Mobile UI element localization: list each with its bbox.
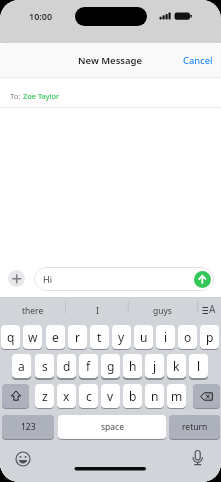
staticText: o: [184, 329, 192, 345]
staticText: x: [63, 388, 70, 404]
staticText: there: [22, 305, 44, 317]
staticText: i: [164, 329, 168, 345]
staticText: r: [75, 329, 80, 345]
staticText: a: [18, 358, 25, 374]
staticText: 10:00: [29, 10, 53, 22]
button[interactable]: h: [123, 354, 142, 378]
staticText: return: [182, 421, 208, 433]
staticText: New Message: [78, 54, 143, 67]
button[interactable]: l: [189, 354, 208, 378]
staticText: u: [140, 329, 148, 345]
button[interactable]: d: [57, 354, 76, 378]
button[interactable]: c: [79, 384, 98, 408]
button[interactable]: q: [1, 325, 20, 349]
button[interactable]: p: [200, 325, 219, 349]
staticText: d: [63, 358, 71, 374]
button[interactable]: [193, 384, 220, 408]
button[interactable]: m: [167, 384, 186, 408]
button[interactable]: a: [12, 354, 31, 378]
staticText: l: [197, 358, 201, 374]
staticText: s: [42, 358, 48, 374]
button[interactable]: b: [123, 384, 142, 408]
staticText: j: [153, 358, 157, 374]
button[interactable]: s: [35, 354, 54, 378]
button[interactable]: return: [169, 415, 220, 439]
button[interactable]: guys: [128, 297, 197, 325]
staticText: Zoe Taylor: [23, 91, 60, 101]
button[interactable]: j: [145, 354, 164, 378]
button[interactable]: f: [79, 354, 98, 378]
staticText: q: [7, 329, 15, 345]
button[interactable]: y: [112, 325, 131, 349]
staticText: m: [171, 388, 183, 404]
button[interactable]: [2, 384, 29, 408]
button[interactable]: g: [101, 354, 120, 378]
button[interactable]: A: [209, 302, 216, 316]
staticText: I: [96, 305, 99, 317]
button[interactable]: there: [0, 297, 66, 325]
button[interactable]: z: [35, 384, 54, 408]
staticText: b: [129, 388, 137, 404]
staticText: n: [151, 388, 159, 404]
button[interactable]: space: [58, 415, 166, 439]
button[interactable]: [194, 271, 211, 288]
button[interactable]: r: [68, 325, 87, 349]
button[interactable]: u: [134, 325, 153, 349]
staticText: t: [97, 329, 102, 345]
button[interactable]: x: [57, 384, 76, 408]
button[interactable]: i: [156, 325, 175, 349]
staticText: 123: [21, 421, 36, 433]
button[interactable]: o: [178, 325, 197, 349]
staticText: v: [107, 388, 114, 404]
staticText: p: [206, 329, 214, 345]
staticText: h: [129, 358, 137, 374]
staticText: z: [42, 388, 48, 404]
button[interactable]: v: [101, 384, 120, 408]
staticText: To:: [10, 91, 23, 101]
button[interactable]: I: [66, 297, 129, 325]
staticText: space: [101, 421, 124, 433]
button[interactable]: e: [46, 325, 65, 349]
staticText: A: [209, 302, 216, 316]
staticText: w: [28, 329, 38, 345]
button[interactable]: 123: [2, 415, 54, 439]
button[interactable]: Cancel: [183, 54, 221, 67]
staticText: y: [118, 329, 125, 345]
button[interactable]: t: [90, 325, 109, 349]
staticText: e: [52, 329, 59, 345]
button[interactable]: [8, 270, 25, 287]
staticText: f: [86, 358, 91, 374]
button[interactable]: k: [167, 354, 186, 378]
staticText: k: [173, 358, 180, 374]
button[interactable]: n: [145, 384, 164, 408]
staticText: Hi: [43, 273, 52, 285]
staticText: c: [86, 388, 92, 404]
staticText: guys: [153, 305, 172, 317]
staticText: Cancel: [183, 54, 213, 67]
staticText: g: [107, 358, 115, 374]
button[interactable]: w: [23, 325, 42, 349]
